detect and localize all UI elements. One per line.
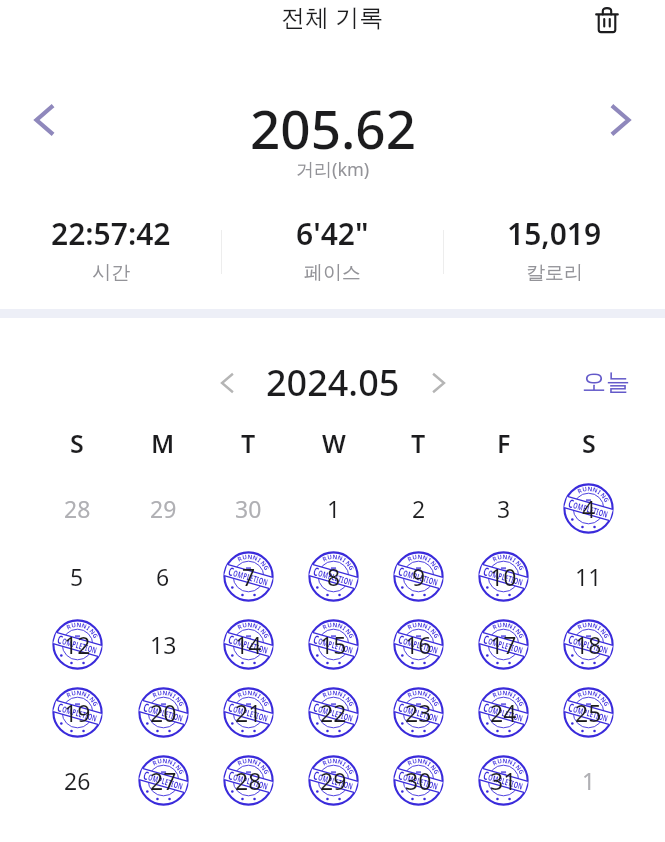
staticText: 26 [64, 765, 91, 796]
staticText: 23 [405, 697, 432, 728]
staticText: T [411, 426, 426, 460]
staticText: 2024.05 [266, 358, 400, 407]
staticText: 15,019 [507, 213, 602, 254]
button[interactable]: 11 [546, 542, 631, 610]
staticText: 30 [405, 765, 432, 796]
staticText: W [322, 426, 346, 460]
staticText: 1 [327, 493, 341, 524]
button[interactable]: 8 [291, 542, 376, 610]
staticText: 14 [235, 629, 262, 660]
staticText: 6'42" [296, 213, 369, 254]
staticText: 28 [235, 765, 262, 796]
staticText: 6 [156, 561, 170, 592]
staticText: 4 [582, 493, 596, 524]
staticText: 페이스 [304, 261, 361, 285]
staticText: 205.62 [250, 92, 416, 164]
staticText: 22:57:42 [51, 213, 171, 254]
staticText: 25 [575, 697, 602, 728]
staticText: 31 [490, 765, 517, 796]
button[interactable]: 9 [376, 542, 461, 610]
button[interactable]: 15 [291, 610, 376, 678]
staticText: 13 [150, 629, 177, 660]
staticText: 29 [320, 765, 347, 796]
button[interactable]: 21 [206, 678, 291, 746]
staticText: 24 [490, 697, 517, 728]
button[interactable]: 오늘 [576, 359, 636, 405]
staticText: 칼로리 [526, 261, 583, 285]
button[interactable]: 6 [120, 542, 206, 610]
staticText: 1 [582, 765, 596, 796]
staticText: S [70, 426, 84, 460]
button[interactable]: 23 [376, 678, 461, 746]
staticText: 전체 기록 [281, 0, 384, 33]
button[interactable]: Next month [420, 364, 458, 402]
button[interactable]: 24 [461, 678, 546, 746]
button[interactable]: 26 [34, 746, 120, 814]
staticText: 3 [497, 493, 511, 524]
staticText: 12 [64, 629, 91, 660]
staticText: 27 [150, 765, 177, 796]
button[interactable]: 19 [34, 678, 120, 746]
button[interactable]: 30 [376, 746, 461, 814]
staticText: T [241, 426, 256, 460]
staticText: 2 [412, 493, 426, 524]
button[interactable]: 28 [206, 746, 291, 814]
staticText: 21 [235, 697, 262, 728]
button[interactable]: 31 [461, 746, 546, 814]
staticText: 7 [242, 561, 256, 592]
staticText: 29 [150, 493, 177, 524]
button[interactable]: 14 [206, 610, 291, 678]
button[interactable]: 20 [120, 678, 206, 746]
button[interactable]: 28 [34, 474, 120, 542]
staticText: 22 [320, 697, 347, 728]
staticText: 20 [150, 697, 177, 728]
staticText: F [497, 426, 511, 460]
staticText: 시간 [92, 261, 130, 285]
staticText: 10 [490, 561, 517, 592]
staticText: 30 [235, 493, 262, 524]
staticText: 거리(km) [296, 157, 370, 182]
button[interactable]: 2 [376, 474, 461, 542]
staticText: 16 [405, 629, 432, 660]
staticText: S [582, 426, 596, 460]
staticText: 17 [490, 629, 517, 660]
button[interactable]: 22 [291, 678, 376, 746]
staticText: 18 [575, 629, 602, 660]
staticText: 오늘 [582, 367, 630, 397]
button[interactable]: 10 [461, 542, 546, 610]
button[interactable]: 7 [206, 542, 291, 610]
staticText: 11 [575, 561, 602, 592]
staticText: 28 [64, 493, 91, 524]
button[interactable]: 3 [461, 474, 546, 542]
staticText: 8 [327, 561, 341, 592]
button[interactable]: 13 [120, 610, 206, 678]
button[interactable]: 18 [546, 610, 631, 678]
button[interactable]: Next period [599, 98, 643, 142]
button[interactable]: Delete all records [586, 0, 628, 39]
staticText: 5 [70, 561, 84, 592]
button[interactable]: 4 [546, 474, 631, 542]
staticText: 15 [320, 629, 347, 660]
button[interactable]: 29 [291, 746, 376, 814]
button[interactable]: 1 [291, 474, 376, 542]
button[interactable]: 12 [34, 610, 120, 678]
button[interactable]: 1 [546, 746, 631, 814]
staticText: 19 [64, 697, 91, 728]
button[interactable]: 17 [461, 610, 546, 678]
button[interactable]: 30 [206, 474, 291, 542]
button[interactable]: 16 [376, 610, 461, 678]
button[interactable]: Previous month [208, 364, 246, 402]
button[interactable]: 27 [120, 746, 206, 814]
staticText: 9 [412, 561, 426, 592]
button[interactable]: Previous period [22, 98, 66, 142]
button[interactable]: 29 [120, 474, 206, 542]
button[interactable]: 5 [34, 542, 120, 610]
button[interactable]: 25 [546, 678, 631, 746]
staticText: M [151, 426, 175, 460]
